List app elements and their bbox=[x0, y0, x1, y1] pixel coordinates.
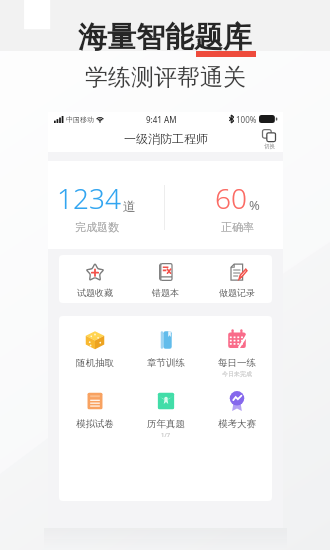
button[interactable]: 做题记录 bbox=[201, 262, 272, 298]
staticText: 模拟试卷 bbox=[76, 418, 114, 430]
staticText: 模考大赛 bbox=[218, 418, 256, 430]
staticText: 1/7 bbox=[161, 431, 171, 439]
button[interactable]: 切换 bbox=[262, 129, 276, 150]
button[interactable]: 随机抽取 bbox=[59, 329, 130, 369]
staticText: 完成题数 bbox=[75, 220, 119, 234]
button[interactable]: 每日一练 bbox=[201, 329, 272, 378]
button[interactable]: 试题收藏 bbox=[59, 262, 130, 298]
button[interactable]: 1234 bbox=[57, 179, 136, 234]
staticText: 海量智能题库 bbox=[78, 19, 252, 56]
staticText: 一级消防工程师 bbox=[124, 131, 208, 146]
staticText: 每日一练 bbox=[218, 357, 256, 369]
staticText: 章节训练 bbox=[147, 357, 185, 369]
staticText: 1234 bbox=[57, 179, 121, 217]
button[interactable]: 章节训练 bbox=[130, 329, 201, 369]
staticText: 道 bbox=[123, 198, 136, 214]
staticText: 错题本 bbox=[152, 287, 179, 298]
staticText: 中国移动 bbox=[66, 115, 94, 124]
staticText: 9:41 AM bbox=[146, 114, 177, 125]
staticText: % bbox=[249, 196, 260, 214]
staticText: 正确率 bbox=[221, 220, 254, 234]
button[interactable]: 60 bbox=[215, 179, 260, 234]
staticText: 60 bbox=[215, 179, 247, 217]
staticText: 学练测评帮通关 bbox=[85, 63, 246, 92]
staticText: 做题记录 bbox=[219, 287, 255, 298]
button[interactable]: 模拟试卷 bbox=[59, 390, 130, 430]
staticText: 历年真题 bbox=[147, 418, 185, 430]
button[interactable]: 历年真题 bbox=[130, 390, 201, 439]
staticText: 今日未完成 bbox=[222, 370, 252, 378]
staticText: 试题收藏 bbox=[77, 287, 113, 298]
staticText: 随机抽取 bbox=[76, 357, 114, 369]
button[interactable]: 模考大赛 bbox=[201, 390, 272, 430]
staticText: 切换 bbox=[264, 143, 275, 150]
button[interactable]: 错题本 bbox=[130, 262, 201, 298]
staticText: 100% bbox=[236, 114, 257, 125]
